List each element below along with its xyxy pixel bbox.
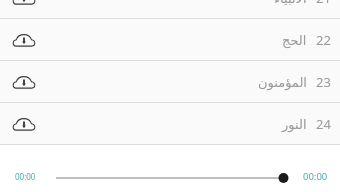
button[interactable]: Download المؤمنون — [12, 70, 36, 94]
button[interactable]: Download النور — [12, 112, 36, 136]
button[interactable]: Download الحج — [12, 28, 36, 52]
staticText: 00:00 — [303, 170, 328, 183]
staticText: 00:00 — [15, 171, 36, 182]
staticText: الأنبياء — [274, 0, 307, 6]
staticText: الحج — [282, 33, 307, 48]
staticText: 24 — [316, 115, 331, 133]
button[interactable]: Download الأنبياء — [0, 0, 340, 19]
button[interactable]: Playback position — [0, 166, 340, 190]
staticText: 22 — [316, 31, 331, 49]
button[interactable]: Download المؤمنون — [0, 61, 340, 103]
staticText: النور — [282, 117, 307, 132]
staticText: المؤمنون — [258, 75, 307, 90]
button[interactable]: Download النور — [0, 103, 340, 145]
button[interactable]: Download الحج — [0, 19, 340, 61]
staticText: 21 — [316, 0, 331, 7]
staticText: 23 — [316, 73, 331, 91]
button[interactable]: Download الأنبياء — [12, 0, 36, 10]
